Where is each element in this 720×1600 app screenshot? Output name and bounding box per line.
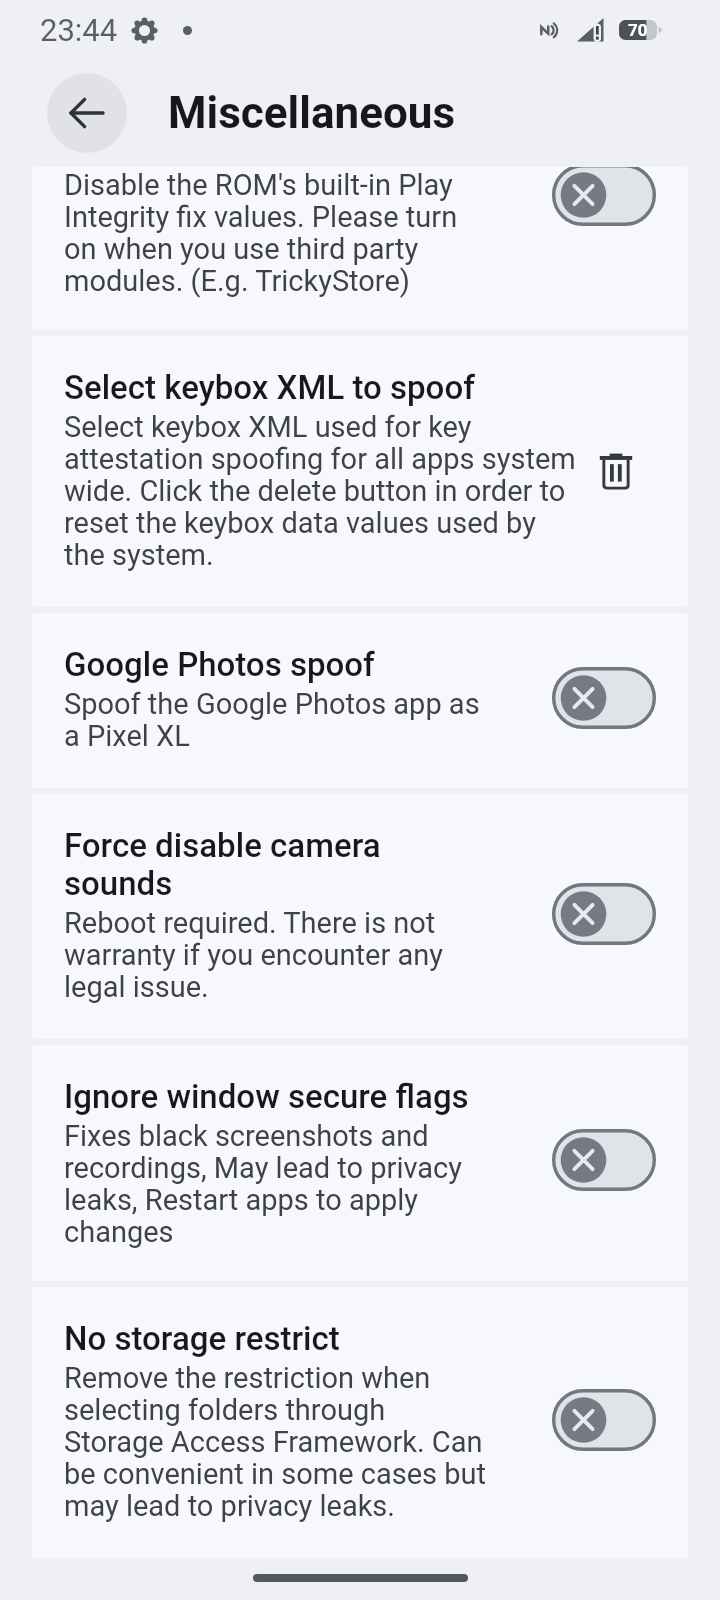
button[interactable]: Force disable camera sounds	[32, 794, 688, 1039]
button[interactable]: Toggle	[552, 1129, 656, 1191]
staticText: Select keybox XML to spoof	[64, 369, 475, 407]
staticText: 70	[628, 20, 648, 40]
staticText: Disable the ROM's built-in Play Integrit…	[64, 170, 474, 298]
button[interactable]: No storage restrict	[32, 1287, 688, 1558]
button[interactable]: Select keybox XML to spoof	[32, 336, 688, 607]
staticText: Spoof the Google Photos app as a Pixel X…	[64, 689, 484, 753]
staticText: Remove the restriction when selecting fo…	[64, 1363, 488, 1523]
staticText: Google Photos spoof	[64, 646, 375, 684]
button[interactable]: Delete	[585, 440, 649, 504]
staticText: Miscellaneous	[168, 87, 456, 139]
button[interactable]: Toggle	[552, 667, 656, 729]
staticText: Select keybox XML used for key attestati…	[64, 412, 579, 572]
button[interactable]: Ignore window secure flags	[32, 1045, 688, 1281]
button[interactable]: Google Photos spoof	[32, 613, 688, 788]
staticText: Reboot required. There is not warranty i…	[64, 908, 464, 1004]
button[interactable]: Disable the ROM's built-in Play Integrit…	[32, 167, 688, 330]
button[interactable]: Toggle	[552, 883, 656, 945]
staticText: Fixes black screenshots and recordings, …	[64, 1121, 474, 1249]
button[interactable]: Toggle	[552, 167, 656, 226]
staticText: Force disable camera sounds	[64, 827, 464, 903]
staticText: Ignore window secure flags	[64, 1078, 469, 1116]
staticText: 23:44	[40, 12, 118, 48]
button[interactable]: Back	[47, 73, 127, 153]
staticText: No storage restrict	[64, 1320, 340, 1358]
button[interactable]: Toggle	[552, 1389, 656, 1451]
